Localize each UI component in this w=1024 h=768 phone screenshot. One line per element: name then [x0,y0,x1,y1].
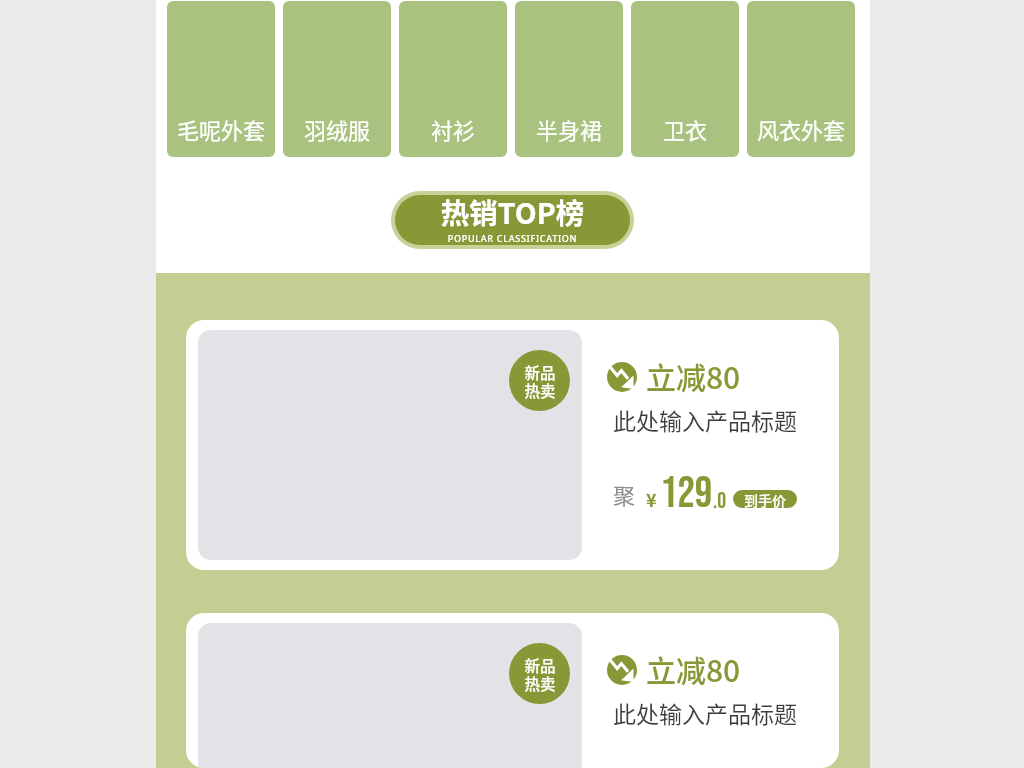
staticText: 到手价 [744,490,786,508]
staticText: 此处输入产品标题 [613,403,797,436]
button[interactable]: 衬衫 [399,1,507,157]
staticText: 立减80 [646,647,741,690]
staticText: 立减80 [646,354,741,397]
button[interactable]: 风衣外套 [747,1,855,157]
button[interactable]: 半身裙 [515,1,623,157]
button[interactable]: 新品 热卖 [186,613,839,768]
button[interactable]: 到手价 [733,490,797,508]
other: Discount [607,655,637,685]
staticText: 衬衫 [431,113,476,145]
staticText: 卫衣 [663,113,708,145]
staticText: 新品 热卖 [524,361,556,402]
button[interactable]: 新品 热卖 [509,643,570,704]
button[interactable]: 热销TOP榜 [395,195,630,245]
staticText: 风衣外套 [757,113,846,145]
staticText: 热销TOP榜 [395,195,630,232]
button[interactable]: 毛呢外套 [167,1,275,157]
staticText: 129 [660,468,713,513]
button[interactable]: 新品 热卖 [509,350,570,411]
staticText: 新品 热卖 [524,654,556,695]
staticText: 聚 [613,478,636,510]
staticText: .0 [713,488,726,514]
other: Discount [607,362,637,392]
staticText: 此处输入产品标题 [613,696,797,729]
staticText: 羽绒服 [304,113,371,145]
button[interactable]: 新品 热卖 [186,320,839,570]
staticText: POPULAR CLASSIFICATION [395,232,630,244]
staticText: 毛呢外套 [177,113,266,145]
button[interactable]: 卫衣 [631,1,739,157]
staticText: 半身裙 [536,113,603,145]
button[interactable]: 羽绒服 [283,1,391,157]
staticText: ¥ [646,486,657,512]
